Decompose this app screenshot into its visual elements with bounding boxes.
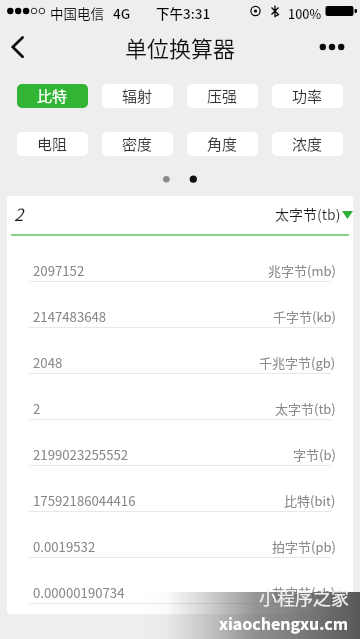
button[interactable]: 0.0019532 (7, 512, 353, 558)
button[interactable]: 2199023255552 (7, 420, 353, 466)
staticText: 辐射 (122, 85, 153, 107)
staticText: 小程序之家 (259, 584, 349, 610)
staticText: 2048 (33, 353, 63, 372)
staticText: 0.0019532 (33, 537, 96, 556)
staticText: 100% (288, 4, 322, 22)
button[interactable]: 2097152 (7, 236, 353, 282)
button[interactable]: 17592186044416 (7, 466, 353, 512)
button[interactable]: More options (314, 22, 360, 64)
staticText: 中国电信 (50, 3, 104, 23)
staticText: 角度 (207, 133, 238, 155)
button[interactable]: 电阻 (17, 132, 88, 156)
staticText: 电阻 (37, 133, 68, 155)
button[interactable]: 浓度 (272, 132, 343, 156)
button[interactable]: 辐射 (102, 84, 173, 108)
button[interactable]: 2 (7, 374, 353, 420)
button[interactable]: 2147483648 (7, 282, 353, 328)
staticText: 字节(b) (293, 445, 336, 464)
button[interactable]: 太字节(tb) (275, 205, 353, 225)
staticText: 单位换算器 (125, 31, 236, 63)
staticText: 2199023255552 (33, 445, 129, 464)
staticText: 拍字节(pb) (272, 537, 336, 556)
button[interactable]: 0.00000190734 (7, 558, 353, 604)
staticText: 密度 (122, 133, 153, 155)
button[interactable]: 压强 (187, 84, 258, 108)
staticText: 比特 (37, 85, 68, 107)
staticText: 下午3:31 (156, 3, 211, 23)
staticText: 0.00000190734 (33, 583, 125, 602)
button[interactable]: 角度 (187, 132, 258, 156)
staticText: 压强 (207, 85, 238, 107)
staticText: 浓度 (292, 133, 323, 155)
button[interactable]: 2048 (7, 328, 353, 374)
button[interactable]: 密度 (102, 132, 173, 156)
staticText: 千字节(kb) (273, 307, 336, 326)
staticText: 2097152 (33, 261, 85, 280)
staticText: 2 (14, 201, 24, 226)
staticText: 艾字节(eb) (272, 583, 336, 602)
staticText: 4G (113, 3, 131, 23)
staticText: 太字节(tb) (275, 204, 341, 224)
staticText: 17592186044416 (33, 491, 136, 510)
button[interactable]: 功率 (272, 84, 343, 108)
button[interactable]: 比特 (17, 84, 88, 108)
staticText: 2147483648 (33, 307, 107, 326)
staticText: xiaochengxu.cm (219, 611, 349, 634)
staticText: 兆字节(mb) (268, 261, 336, 280)
staticText: 功率 (292, 85, 323, 107)
staticText: 太字节(tb) (275, 399, 336, 418)
button[interactable]: Back (0, 22, 44, 64)
staticText: 千兆字节(gb) (259, 353, 336, 372)
staticText: 2 (33, 399, 41, 418)
staticText: 比特(bit) (284, 491, 336, 510)
